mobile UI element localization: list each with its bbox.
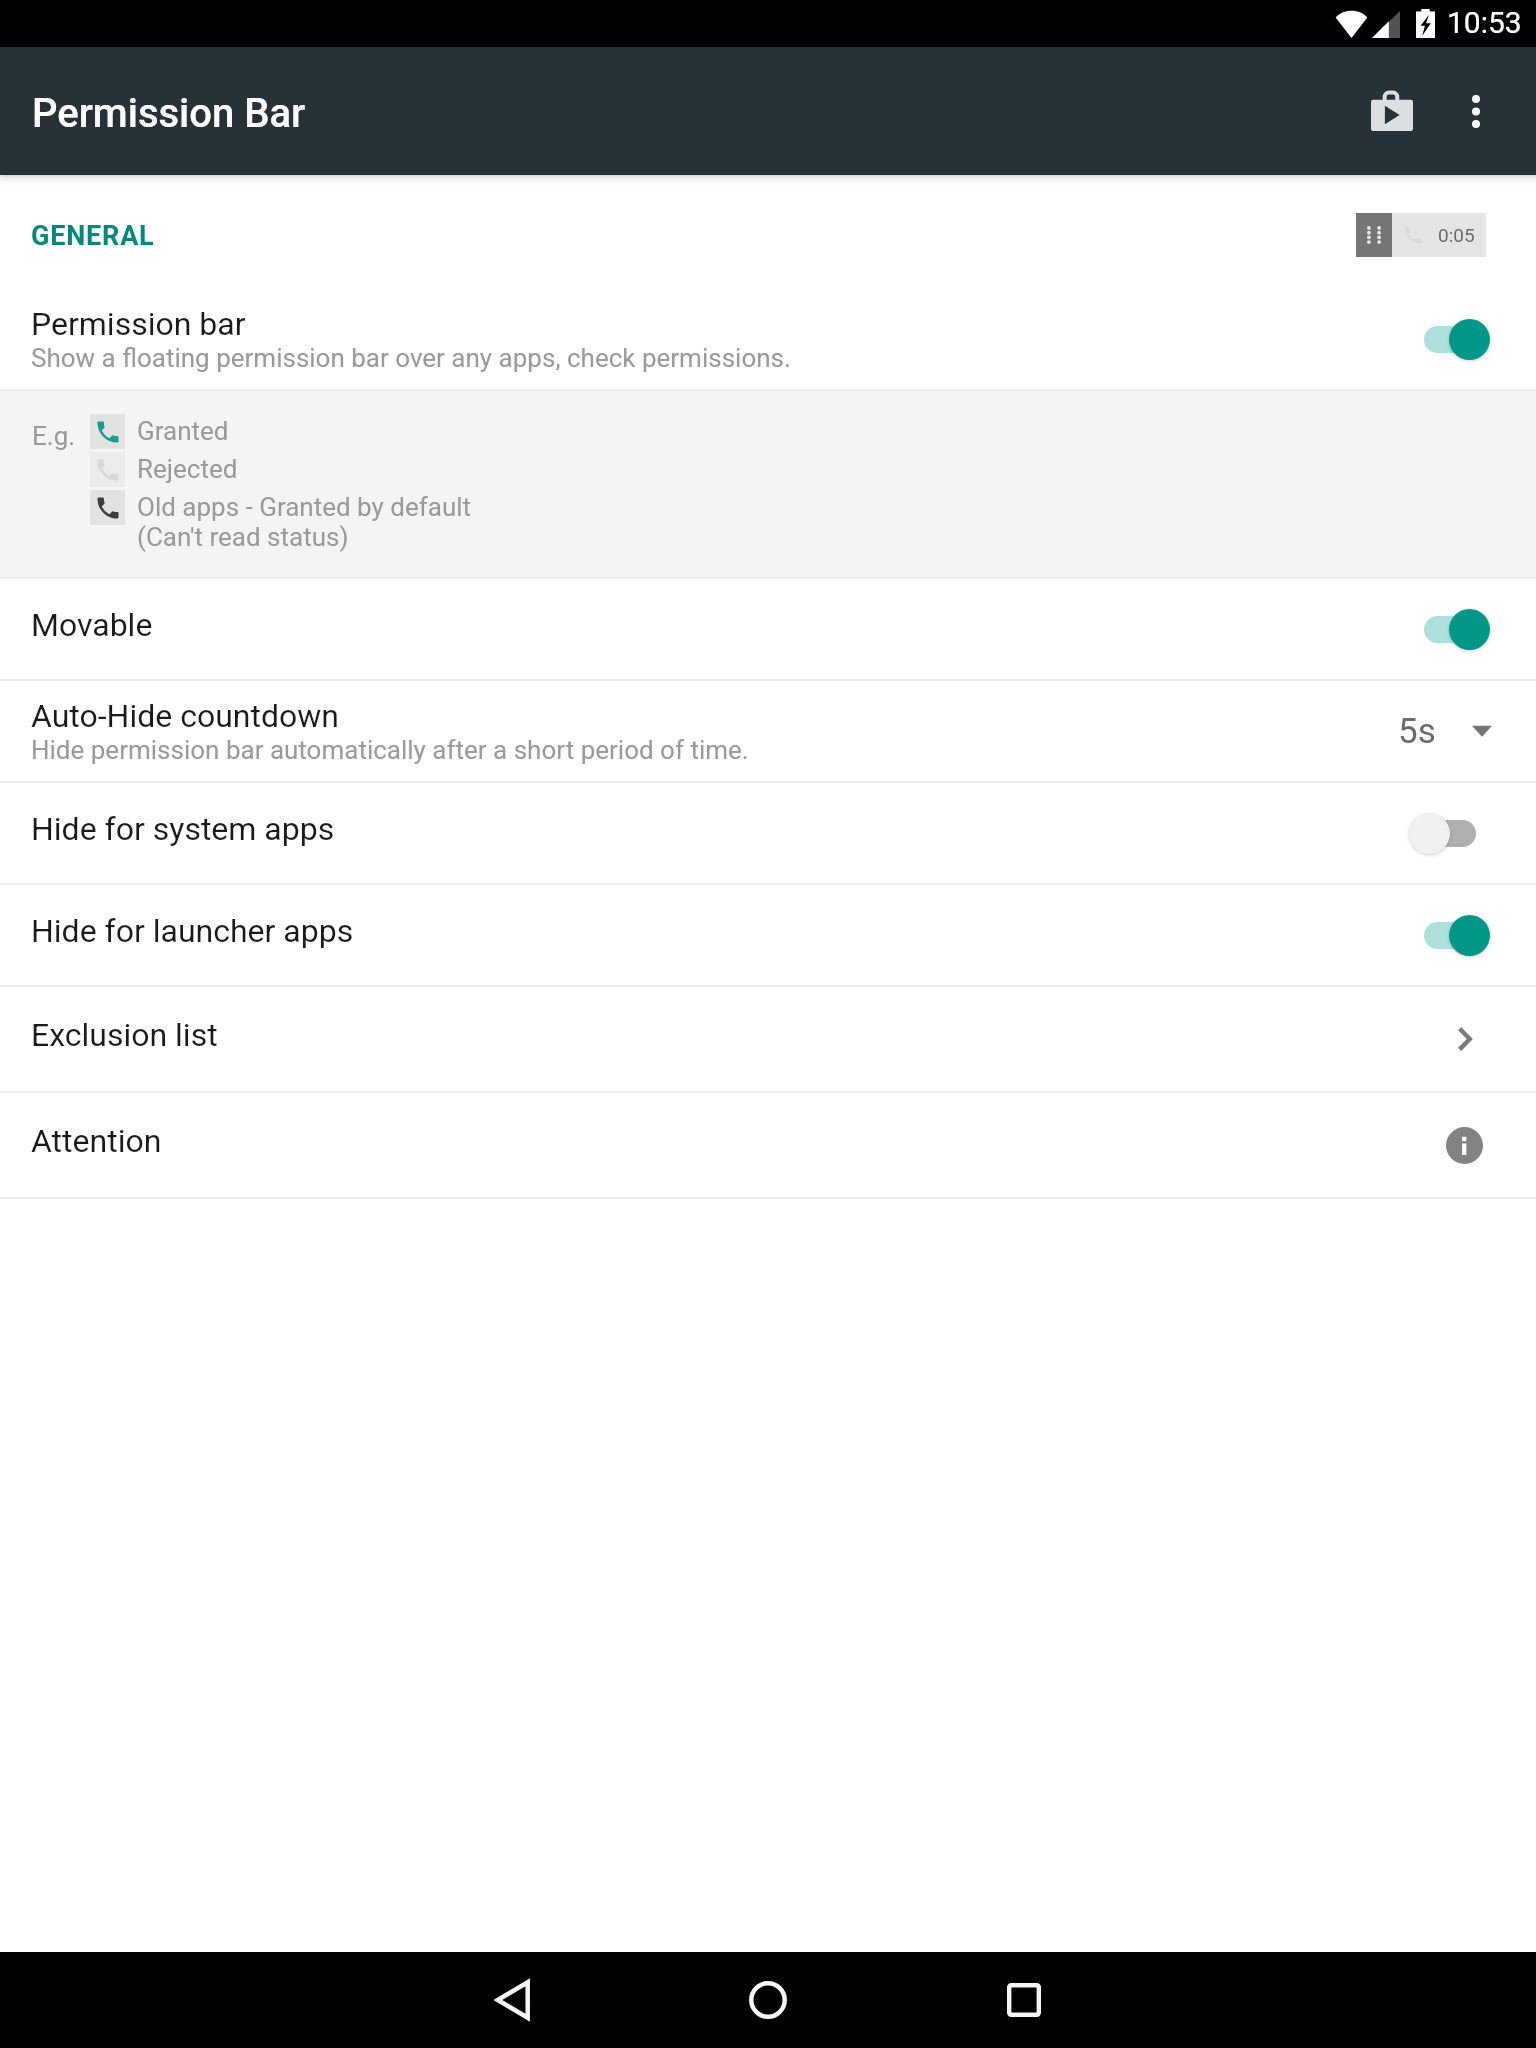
button[interactable]: Toggle off <box>1409 809 1490 857</box>
staticText: Show a floating permission bar over any … <box>31 343 791 373</box>
button[interactable]: More options <box>1434 55 1518 167</box>
staticText: 0:05 <box>1438 224 1475 246</box>
staticText: Hide permission bar automatically after … <box>31 735 749 765</box>
button[interactable]: Permission bar preview <box>1356 213 1486 257</box>
staticText: Granted <box>137 416 229 446</box>
staticText: Hide for system apps <box>31 810 335 848</box>
button[interactable]: Back <box>384 1952 640 2048</box>
staticText: Permission Bar <box>32 90 306 137</box>
staticText: E.g. <box>32 421 76 451</box>
staticText: Old apps - Granted by default <box>137 492 472 522</box>
button[interactable]: Recents <box>896 1952 1152 2048</box>
staticText: Auto-Hide countdown <box>31 697 339 735</box>
staticText: Permission bar <box>31 305 246 343</box>
button[interactable]: Exclusion list <box>0 987 1536 1091</box>
button[interactable]: Hide for system apps <box>0 783 1536 883</box>
button[interactable]: Movable <box>0 579 1536 679</box>
button[interactable]: Information <box>1444 1121 1484 1169</box>
button[interactable]: Hide for launcher apps <box>0 885 1536 985</box>
button[interactable]: Toggle on <box>1409 605 1490 653</box>
button[interactable]: Auto-hide countdown, 5s <box>1396 711 1490 752</box>
staticText: 10:53 <box>1447 5 1522 40</box>
staticText: Movable <box>31 606 153 644</box>
staticText: Rejected <box>137 454 238 484</box>
button[interactable]: Toggle on <box>1409 315 1490 363</box>
staticText: 5s <box>1398 711 1436 752</box>
button[interactable]: Home <box>640 1952 896 2048</box>
button[interactable]: Auto-Hide countdown <box>0 681 1536 781</box>
staticText: Hide for launcher apps <box>31 912 354 950</box>
staticText: (Can't read status) <box>137 522 349 552</box>
staticText: Exclusion list <box>31 1016 218 1054</box>
button[interactable]: Open exclusion list <box>1445 1015 1485 1063</box>
button[interactable]: Permission bar <box>0 288 1536 389</box>
staticText: Attention <box>31 1122 162 1160</box>
button[interactable]: Attention <box>0 1093 1536 1197</box>
button[interactable]: Play Store <box>1350 55 1434 167</box>
button[interactable]: Toggle on <box>1409 911 1490 959</box>
staticText: GENERAL <box>31 220 155 252</box>
